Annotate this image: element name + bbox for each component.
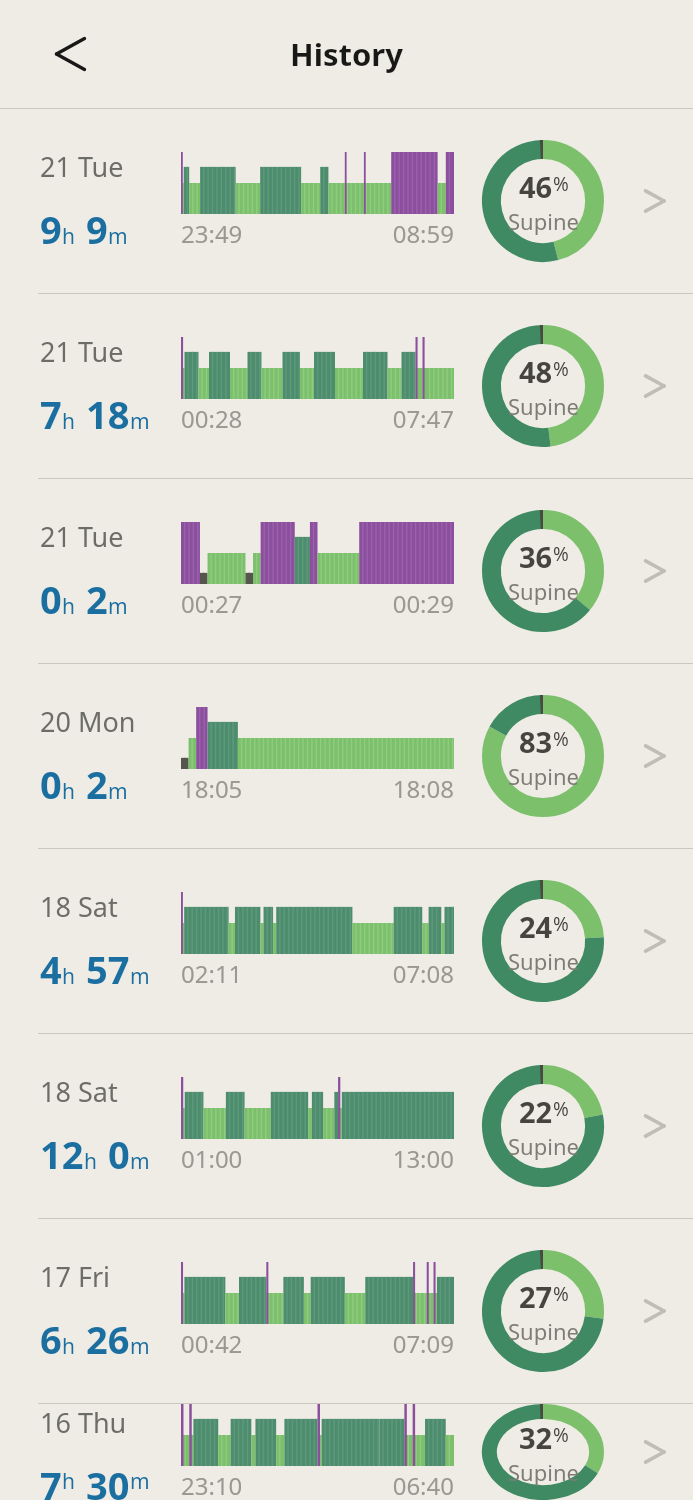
staticText: 9 xyxy=(40,203,62,255)
staticText: 18:08 xyxy=(317,772,454,805)
staticText: 12 xyxy=(40,1128,84,1180)
staticText: 17 Fri xyxy=(40,1258,111,1295)
staticText: % xyxy=(553,356,569,382)
staticText: 27 xyxy=(519,1277,553,1316)
button[interactable]: 21 Tue xyxy=(0,294,693,478)
button[interactable]: Open sleep session details xyxy=(625,849,693,1033)
staticText: Supine xyxy=(508,391,579,421)
staticText: % xyxy=(553,726,569,752)
staticText: Supine xyxy=(508,1316,579,1346)
button[interactable]: Back xyxy=(32,19,102,89)
staticText: 57 xyxy=(86,943,130,995)
staticText: m xyxy=(130,962,150,991)
staticText: 16 Thu xyxy=(40,1404,127,1441)
staticText: 18:05 xyxy=(181,772,317,805)
staticText: 0 xyxy=(108,1128,130,1180)
staticText: 13:00 xyxy=(317,1142,454,1175)
button[interactable]: Open sleep session details xyxy=(625,664,693,848)
staticText: 07:08 xyxy=(317,957,454,990)
staticText: 30 xyxy=(86,1459,130,1500)
staticText: h xyxy=(62,962,75,991)
staticText: 22 xyxy=(519,1092,553,1131)
button[interactable]: Open sleep session details xyxy=(625,479,693,663)
staticText: % xyxy=(553,541,569,567)
staticText: 36 xyxy=(519,537,553,576)
staticText: % xyxy=(553,1281,569,1307)
staticText: 83 xyxy=(519,722,553,761)
button[interactable]: 20 Mon xyxy=(0,664,693,848)
staticText: h xyxy=(62,1332,75,1361)
button[interactable]: Open sleep session details xyxy=(625,1034,693,1218)
staticText: m xyxy=(108,592,128,621)
button[interactable]: 18 Sat xyxy=(0,1034,693,1218)
staticText: 23:49 xyxy=(181,217,317,250)
staticText: 0 xyxy=(40,573,62,625)
staticText: h xyxy=(62,1467,75,1496)
staticText: m xyxy=(130,1147,150,1176)
button[interactable]: 17 Fri xyxy=(0,1219,693,1403)
staticText: 7 xyxy=(40,1459,62,1500)
staticText: Supine xyxy=(508,206,579,236)
button[interactable]: Open sleep session details xyxy=(625,109,693,293)
staticText: h xyxy=(62,407,75,436)
staticText: % xyxy=(553,171,569,197)
staticText: m xyxy=(108,777,128,806)
staticText: m xyxy=(130,1332,150,1361)
staticText: h xyxy=(84,1147,97,1176)
staticText: m xyxy=(130,407,150,436)
staticText: 21 Tue xyxy=(40,148,124,185)
staticText: 08:59 xyxy=(317,217,454,250)
staticText: 32 xyxy=(519,1418,553,1457)
staticText: 26 xyxy=(86,1313,130,1365)
staticText: % xyxy=(553,1422,569,1448)
staticText: 18 xyxy=(86,388,130,440)
button[interactable]: Open sleep session details xyxy=(625,294,693,478)
staticText: 46 xyxy=(519,167,553,206)
staticText: 7 xyxy=(40,388,62,440)
staticText: 07:09 xyxy=(317,1327,454,1360)
staticText: 18 Sat xyxy=(40,888,118,925)
staticText: 24 xyxy=(519,907,553,946)
staticText: 6 xyxy=(40,1313,62,1365)
staticText: 2 xyxy=(86,573,108,625)
staticText: History xyxy=(290,33,403,75)
staticText: 4 xyxy=(40,943,62,995)
button[interactable]: 21 Tue xyxy=(0,109,693,293)
staticText: 00:42 xyxy=(181,1327,317,1360)
staticText: 06:40 xyxy=(317,1469,454,1500)
staticText: 00:29 xyxy=(317,587,454,620)
staticText: 00:27 xyxy=(181,587,317,620)
staticText: 20 Mon xyxy=(40,703,136,740)
button[interactable]: 18 Sat xyxy=(0,849,693,1033)
button[interactable]: 21 Tue xyxy=(0,479,693,663)
staticText: 02:11 xyxy=(181,957,317,990)
staticText: 23:10 xyxy=(181,1469,317,1500)
staticText: 01:00 xyxy=(181,1142,317,1175)
staticText: Supine xyxy=(508,1131,579,1161)
staticText: 21 Tue xyxy=(40,333,124,370)
staticText: 18 Sat xyxy=(40,1073,118,1110)
staticText: Supine xyxy=(508,1457,579,1487)
staticText: Supine xyxy=(508,946,579,976)
button[interactable]: Open sleep session details xyxy=(625,1404,693,1500)
staticText: 48 xyxy=(519,352,553,391)
staticText: m xyxy=(108,222,128,251)
staticText: 9 xyxy=(86,203,108,255)
staticText: m xyxy=(130,1467,150,1496)
staticText: Supine xyxy=(508,576,579,606)
staticText: % xyxy=(553,911,569,937)
staticText: h xyxy=(62,777,75,806)
staticText: 00:28 xyxy=(181,402,317,435)
staticText: h xyxy=(62,222,75,251)
button[interactable]: Open sleep session details xyxy=(625,1219,693,1403)
staticText: 07:47 xyxy=(317,402,454,435)
staticText: 0 xyxy=(40,758,62,810)
staticText: 2 xyxy=(86,758,108,810)
staticText: % xyxy=(553,1096,569,1122)
button[interactable]: 16 Thu xyxy=(0,1404,693,1500)
staticText: 21 Tue xyxy=(40,518,124,555)
staticText: h xyxy=(62,592,75,621)
staticText: Supine xyxy=(508,761,579,791)
